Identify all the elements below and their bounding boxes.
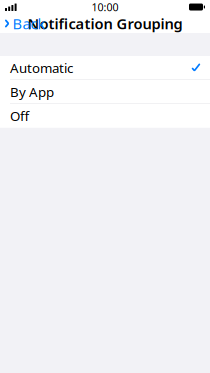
staticText: Automatic xyxy=(10,59,73,77)
button[interactable]: Back xyxy=(0,11,50,36)
staticText: Off xyxy=(10,107,29,125)
staticText: Back xyxy=(12,14,45,33)
button[interactable]: Off xyxy=(0,104,210,127)
button[interactable]: Automatic xyxy=(0,56,210,79)
staticText: 10:00 xyxy=(91,0,118,14)
button[interactable]: By App xyxy=(0,80,210,103)
staticText: By App xyxy=(10,83,54,101)
staticText: Notification Grouping xyxy=(27,14,182,33)
